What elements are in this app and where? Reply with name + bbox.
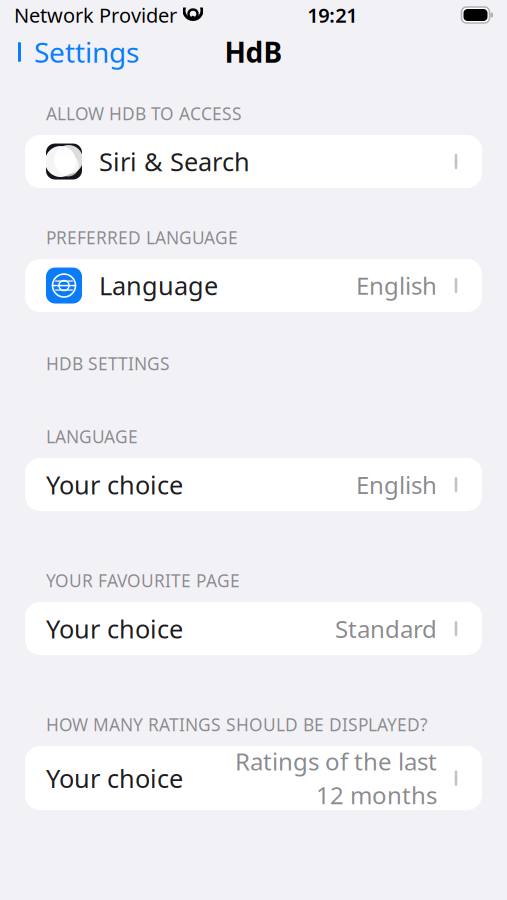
staticText: Your choice bbox=[46, 468, 183, 501]
staticText: LANGUAGE bbox=[46, 425, 138, 448]
staticText: Language bbox=[99, 269, 218, 302]
staticText: 19:21 bbox=[307, 2, 357, 28]
staticText: Standard bbox=[335, 613, 437, 645]
staticText: Your choice bbox=[46, 612, 183, 645]
staticText: HDB SETTINGS bbox=[46, 352, 170, 375]
button[interactable]: Language bbox=[25, 259, 482, 312]
staticText: Your choice bbox=[46, 761, 183, 795]
staticText: HdB bbox=[224, 33, 282, 71]
staticText: ALLOW HDB TO ACCESS bbox=[46, 102, 242, 125]
staticText: HOW MANY RATINGS SHOULD BE DISPLAYED? bbox=[46, 713, 428, 736]
staticText: Ratings of the last bbox=[235, 745, 437, 777]
button[interactable]: Your choice bbox=[25, 458, 482, 511]
staticText: English bbox=[356, 270, 437, 301]
staticText: YOUR FAVOURITE PAGE bbox=[46, 569, 240, 592]
staticText: Siri & Search bbox=[99, 145, 250, 178]
staticText: Network Provider bbox=[14, 2, 177, 28]
staticText: 12 months bbox=[316, 779, 437, 811]
staticText: PREFERRED LANGUAGE bbox=[46, 226, 238, 249]
button[interactable]: Your choice bbox=[25, 602, 482, 655]
button[interactable]: Your choice bbox=[25, 746, 482, 810]
staticText: Settings bbox=[34, 33, 139, 71]
button[interactable]: Siri & Search bbox=[25, 135, 482, 188]
staticText: English bbox=[356, 469, 437, 500]
button[interactable]: Settings bbox=[0, 27, 153, 77]
